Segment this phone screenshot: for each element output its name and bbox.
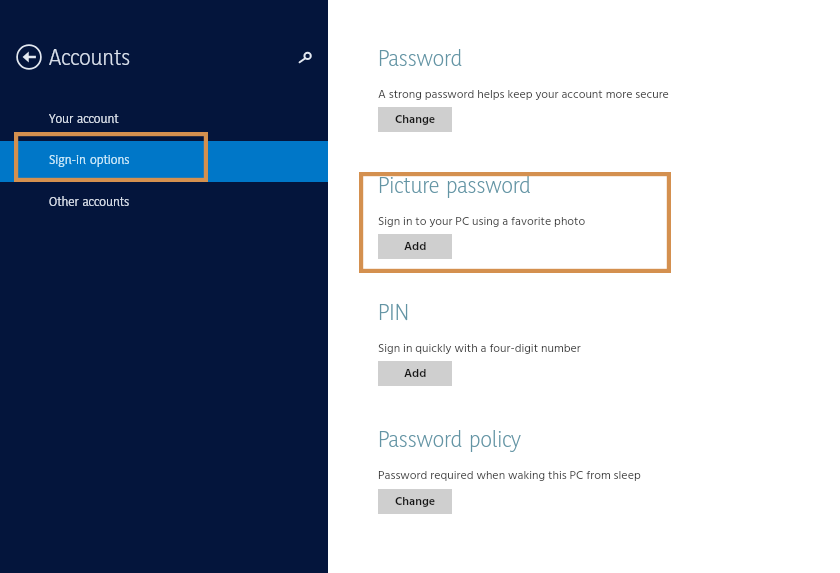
staticText: Add <box>404 237 427 256</box>
staticText: Change <box>395 110 436 129</box>
staticText: Picture password <box>378 170 531 202</box>
staticText: A strong password helps keep your accoun… <box>378 85 669 104</box>
button[interactable]: Back <box>16 44 42 70</box>
staticText: PIN <box>378 297 409 329</box>
button[interactable]: Change <box>378 107 452 132</box>
button[interactable]: Change <box>378 489 452 514</box>
staticText: Add <box>404 364 427 383</box>
staticText: Password <box>378 43 462 75</box>
button[interactable]: Add <box>378 361 452 386</box>
button[interactable]: Search <box>297 45 318 66</box>
button[interactable]: Add <box>378 234 452 259</box>
button[interactable]: Sign-in options <box>0 141 328 182</box>
staticText: Sign in to your PC using a favorite phot… <box>378 212 586 231</box>
staticText: Change <box>395 492 436 511</box>
staticText: Password required when waking this PC fr… <box>378 466 641 485</box>
staticText: Your account <box>49 110 119 129</box>
button[interactable]: Other accounts <box>0 187 328 217</box>
button[interactable]: Your account <box>0 104 328 134</box>
staticText: Password policy <box>378 424 521 456</box>
staticText: Other accounts <box>49 193 130 212</box>
staticText: Sign-in options <box>49 151 130 170</box>
staticText: Sign in quickly with a four-digit number <box>378 339 581 358</box>
staticText: Accounts <box>49 42 131 74</box>
